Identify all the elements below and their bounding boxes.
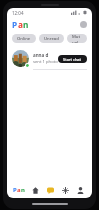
staticText: Unread xyxy=(44,36,59,42)
staticText: Mutual likes xyxy=(72,34,82,43)
button[interactable]: Online xyxy=(12,34,36,43)
staticText: n xyxy=(23,19,29,30)
button[interactable]: Home xyxy=(29,184,41,196)
button[interactable]: Messages xyxy=(44,184,56,196)
staticText: n xyxy=(21,186,25,194)
button[interactable]: P xyxy=(12,183,26,197)
staticText: a xyxy=(18,19,23,30)
staticText: anna d xyxy=(33,52,49,58)
button[interactable]: Discover xyxy=(59,184,71,196)
button[interactable]: anna d xyxy=(7,48,92,69)
staticText: Online xyxy=(17,36,31,42)
staticText: P xyxy=(13,186,17,194)
button[interactable]: Mutual likes xyxy=(67,34,87,43)
staticText: a xyxy=(17,186,21,194)
button[interactable]: Profile xyxy=(74,184,86,196)
button[interactable]: Start chat xyxy=(58,55,87,63)
staticText: sent 1 photo xyxy=(33,59,58,65)
staticText: Start chat xyxy=(63,57,82,62)
button[interactable]: Unread xyxy=(39,34,64,43)
staticText: P xyxy=(12,19,18,30)
button[interactable]: Account xyxy=(80,21,87,28)
staticText: 12:04 xyxy=(12,10,24,16)
